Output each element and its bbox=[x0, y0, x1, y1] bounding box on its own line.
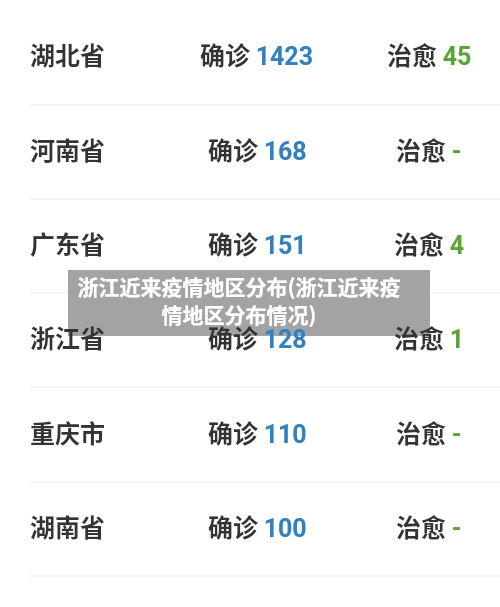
staticText: 治愈 - bbox=[396, 508, 462, 544]
staticText: 确诊 110 bbox=[208, 414, 307, 450]
staticText: 治愈 - bbox=[396, 131, 462, 167]
staticText: 广东省 bbox=[30, 225, 106, 261]
staticText: 浙江近来疫情地区分布(浙江近来疫情地区分布情况) bbox=[74, 271, 404, 329]
staticText: 河南省 bbox=[30, 131, 106, 167]
button[interactable]: 浙江省 bbox=[0, 291, 500, 383]
staticText: 确诊 1423 bbox=[200, 36, 314, 72]
staticText: 确诊 100 bbox=[208, 508, 307, 544]
staticText: 治愈 4 bbox=[394, 225, 465, 261]
button[interactable]: 重庆市 bbox=[0, 385, 500, 478]
staticText: 湖北省 bbox=[30, 36, 106, 72]
staticText: 确诊 168 bbox=[208, 131, 307, 167]
staticText: 治愈 1 bbox=[394, 319, 465, 355]
staticText: 湖南省 bbox=[30, 508, 106, 544]
button[interactable]: 河南省 bbox=[0, 103, 500, 195]
button[interactable]: 广东省 bbox=[0, 197, 500, 289]
staticText: 治愈 - bbox=[396, 414, 462, 450]
staticText: 重庆市 bbox=[30, 414, 106, 450]
staticText: 治愈 45 bbox=[387, 36, 472, 72]
button[interactable]: 湖南省 bbox=[0, 480, 500, 572]
staticText: 确诊 151 bbox=[208, 225, 307, 261]
staticText: 确诊 128 bbox=[208, 319, 307, 355]
button[interactable]: 湖北省 bbox=[0, 7, 500, 101]
staticText: 浙江省 bbox=[30, 319, 106, 355]
